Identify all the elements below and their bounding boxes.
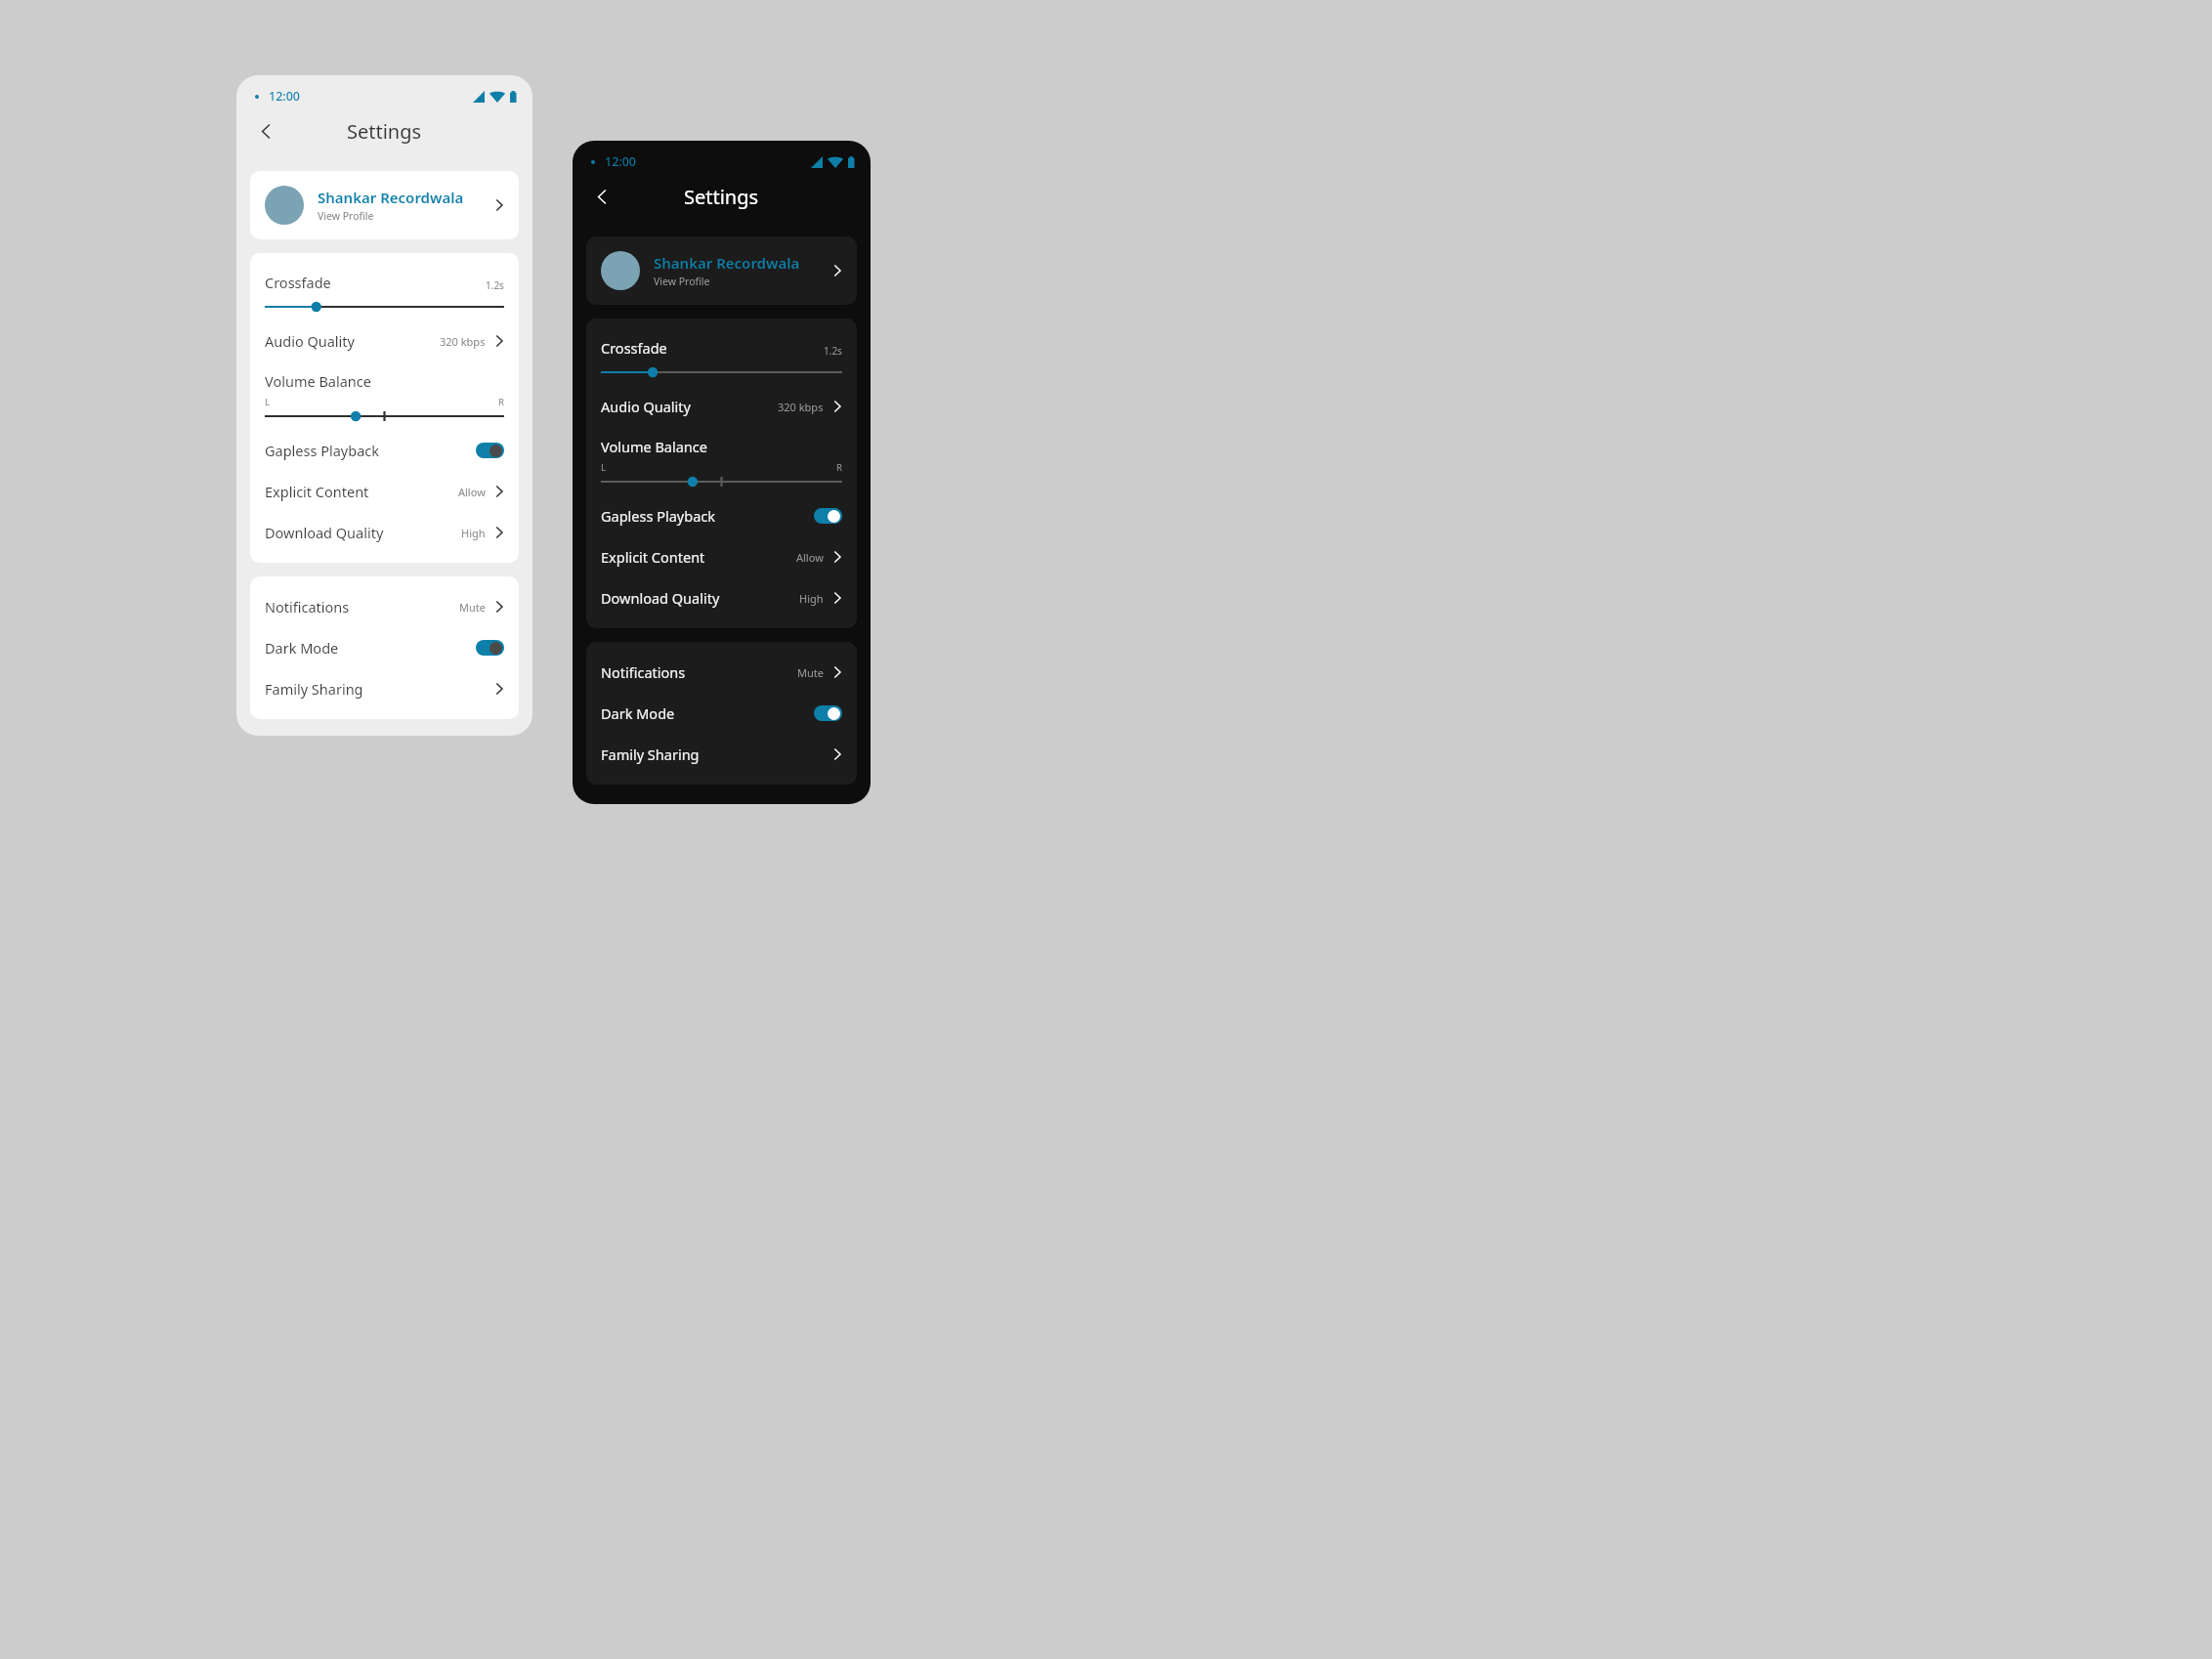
- staticText: Shankar Recordwala: [654, 253, 800, 273]
- staticText: Notifications: [601, 662, 797, 682]
- staticText: Allow: [796, 550, 824, 565]
- button[interactable]: Dark Mode: [265, 627, 504, 668]
- button[interactable]: Gapless Playback: [265, 430, 504, 471]
- staticText: Mute: [459, 600, 486, 615]
- button[interactable]: Notifications: [601, 652, 842, 693]
- staticText: R: [498, 396, 504, 408]
- staticText: Shankar Recordwala: [318, 188, 464, 207]
- staticText: View Profile: [654, 275, 710, 288]
- staticText: L: [265, 396, 270, 408]
- staticText: Family Sharing: [601, 744, 832, 764]
- staticText: Gapless Playback: [265, 441, 476, 460]
- staticText: Download Quality: [265, 523, 461, 542]
- staticText: Explicit Content: [265, 482, 458, 501]
- button[interactable]: Volume Balance: [265, 362, 504, 430]
- button[interactable]: Download Quality: [601, 577, 842, 618]
- staticText: Crossfade: [265, 273, 486, 292]
- button[interactable]: Family Sharing: [601, 734, 842, 775]
- button[interactable]: Dark Mode: [601, 693, 842, 734]
- staticText: L: [601, 461, 606, 474]
- staticText: Download Quality: [601, 588, 799, 608]
- staticText: High: [799, 591, 824, 606]
- staticText: 12:00: [269, 88, 301, 105]
- staticText: Mute: [797, 665, 824, 680]
- staticText: Settings: [347, 118, 422, 145]
- staticText: 1.2s: [486, 278, 504, 292]
- staticText: Audio Quality: [265, 331, 440, 351]
- button[interactable]: Explicit Content: [265, 471, 504, 512]
- staticText: Settings: [684, 184, 759, 210]
- staticText: 12:00: [605, 153, 637, 170]
- staticText: Crossfade: [601, 338, 824, 358]
- staticText: Gapless Playback: [601, 506, 814, 526]
- button[interactable]: Shankar Recordwala: [586, 236, 857, 305]
- button[interactable]: Explicit Content: [601, 536, 842, 577]
- staticText: Family Sharing: [265, 679, 494, 699]
- staticText: High: [461, 526, 486, 540]
- staticText: Audio Quality: [601, 397, 778, 416]
- staticText: 320 kbps: [778, 400, 824, 414]
- staticText: Explicit Content: [601, 547, 796, 567]
- staticText: View Profile: [318, 209, 374, 223]
- button[interactable]: Family Sharing: [265, 668, 504, 709]
- staticText: 320 kbps: [440, 334, 486, 349]
- staticText: Volume Balance: [265, 371, 371, 391]
- staticText: 1.2s: [824, 344, 842, 358]
- button[interactable]: Logout: [236, 733, 532, 736]
- button[interactable]: Gapless Playback: [601, 495, 842, 536]
- staticText: Notifications: [265, 597, 459, 617]
- staticText: Dark Mode: [265, 638, 476, 658]
- staticText: Allow: [458, 485, 486, 499]
- button[interactable]: Notifications: [265, 586, 504, 627]
- button[interactable]: Back: [247, 112, 284, 149]
- button[interactable]: Shankar Recordwala: [250, 171, 519, 239]
- button[interactable]: Back: [583, 178, 620, 215]
- button[interactable]: Download Quality: [265, 512, 504, 553]
- button[interactable]: Logout: [573, 798, 871, 804]
- button[interactable]: Audio Quality: [601, 386, 842, 427]
- button[interactable]: Volume Balance: [601, 427, 842, 495]
- button[interactable]: Crossfade: [601, 328, 842, 386]
- staticText: R: [836, 461, 842, 474]
- staticText: Dark Mode: [601, 703, 814, 723]
- button[interactable]: Audio Quality: [265, 320, 504, 362]
- staticText: Volume Balance: [601, 437, 707, 456]
- button[interactable]: Crossfade: [265, 263, 504, 320]
